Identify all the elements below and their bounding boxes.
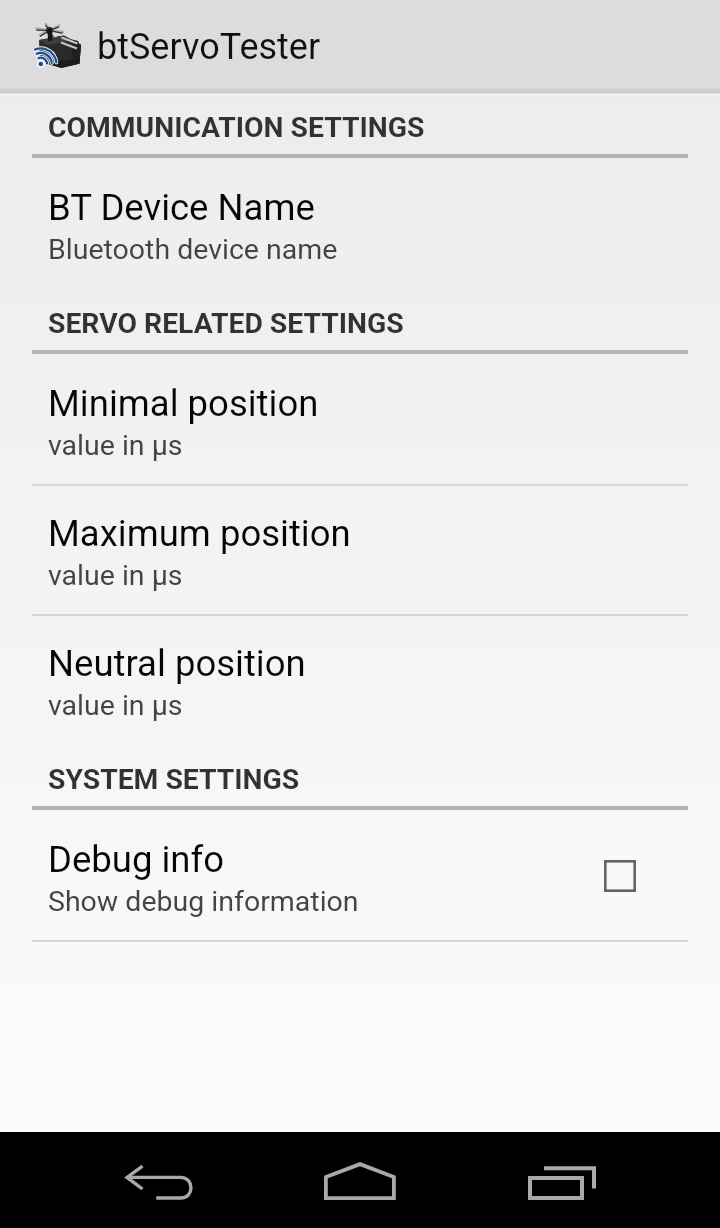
button[interactable]: Minimal position [0,354,720,484]
staticText: Neutral position [48,642,306,685]
button[interactable]: Neutral position [0,614,720,744]
staticText: Bluetooth device name [48,233,338,266]
staticText: btServoTester [97,26,321,68]
staticText: value in µs [48,429,183,462]
button[interactable]: Recent apps [510,1132,614,1228]
staticText: SYSTEM SETTINGS [48,763,300,796]
staticText: value in µs [48,559,183,592]
button[interactable]: Back [108,1132,212,1228]
staticText: SERVO RELATED SETTINGS [48,307,404,340]
button[interactable]: BT Device Name [0,158,720,288]
staticText: BT Device Name [48,186,315,229]
button[interactable]: Maximum position [0,484,720,614]
button[interactable]: Debug info [0,810,720,942]
staticText: Minimal position [48,382,319,425]
staticText: COMMUNICATION SETTINGS [48,111,425,144]
staticText: Debug info [48,838,225,881]
staticText: value in µs [48,689,183,722]
staticText: Show debug information [48,885,359,918]
staticText: Maximum position [48,512,351,555]
button[interactable]: Home [308,1132,412,1228]
button[interactable]: btServoTester [0,0,340,92]
